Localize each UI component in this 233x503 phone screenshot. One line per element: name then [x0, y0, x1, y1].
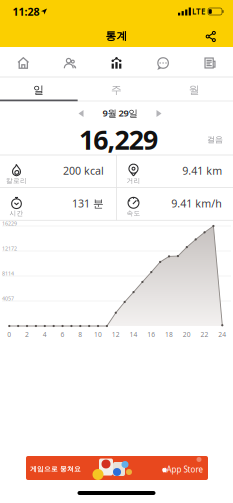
staticText: 20	[183, 330, 191, 339]
staticText: 6	[60, 330, 64, 339]
staticText: App Store	[166, 464, 203, 475]
staticText: 12	[112, 330, 120, 339]
staticText: 16,229	[79, 122, 158, 157]
staticText: 주	[111, 83, 122, 96]
staticText: 14	[130, 330, 138, 339]
staticText: 8114	[2, 270, 14, 277]
staticText: 18	[165, 330, 173, 339]
staticText: 9.41 km/h	[171, 196, 222, 210]
staticText: 속도	[126, 209, 140, 217]
staticText: 24	[218, 330, 226, 339]
button[interactable]: Share	[205, 31, 217, 42]
staticText: 거리	[126, 177, 140, 185]
staticText: 통계	[105, 29, 127, 42]
staticText: 9월 29일	[102, 107, 137, 119]
staticText: 칼로리	[6, 177, 27, 185]
staticText: 일	[33, 83, 44, 96]
button[interactable]: 광고	[26, 456, 208, 480]
staticText: 게임으로 뭉쳐요	[30, 465, 81, 473]
button[interactable]: Next day	[151, 105, 167, 121]
button[interactable]: 월	[156, 79, 233, 101]
staticText: 16	[147, 330, 155, 339]
button[interactable]: News	[187, 49, 233, 77]
staticText: 200 kcal	[63, 163, 104, 178]
button[interactable]: 일	[0, 79, 77, 101]
staticText: 11:28	[12, 4, 39, 19]
staticText: 9.41 km	[182, 163, 222, 178]
staticText: 0	[7, 330, 11, 339]
staticText: 131 분	[72, 196, 104, 210]
staticText: 월	[189, 83, 200, 96]
staticText: 12172	[2, 245, 17, 252]
button[interactable]: Statistics	[93, 49, 139, 77]
staticText: 10	[94, 330, 102, 339]
staticText: 2	[25, 330, 29, 339]
staticText: 시간	[9, 209, 23, 217]
button[interactable]: Home	[0, 49, 46, 77]
staticText: 4057	[2, 295, 14, 302]
staticText: 16229	[2, 220, 17, 227]
staticText: LTE	[192, 6, 205, 17]
button[interactable]: Friends	[47, 49, 93, 77]
staticText: 8	[78, 330, 82, 339]
button[interactable]: Previous day	[73, 105, 89, 121]
button[interactable]: Chat	[140, 49, 186, 77]
staticText: 4	[43, 330, 47, 339]
button[interactable]: 주	[78, 79, 155, 101]
staticText: 22	[201, 330, 209, 339]
staticText: 걸음	[207, 135, 223, 144]
